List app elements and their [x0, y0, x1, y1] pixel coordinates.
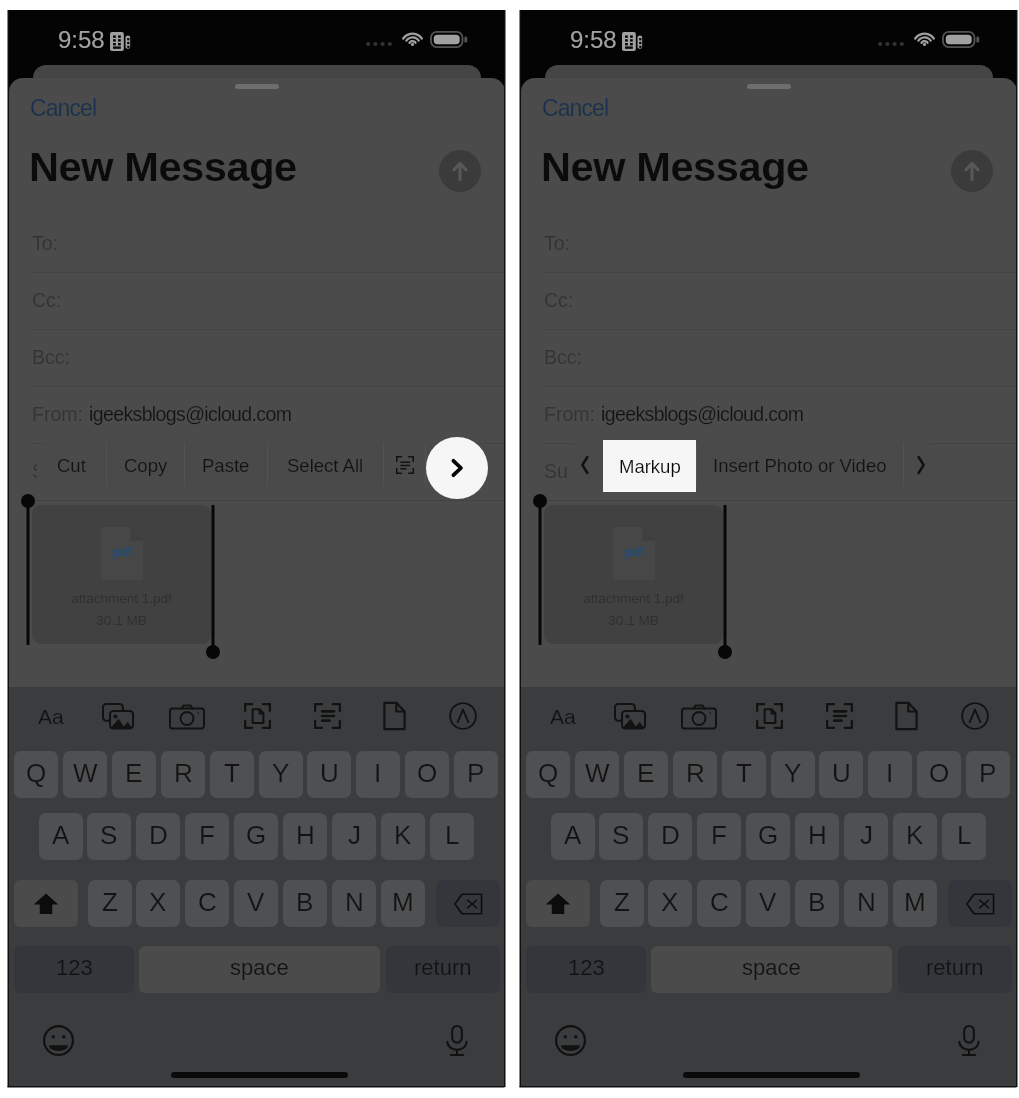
- button[interactable]: 123: [14, 946, 134, 993]
- button[interactable]: L: [430, 813, 474, 860]
- button[interactable]: Z: [88, 880, 132, 927]
- button[interactable]: J: [844, 813, 888, 860]
- button[interactable]: pdf: [32, 505, 211, 644]
- button[interactable]: Scan document: [748, 695, 790, 737]
- button[interactable]: V: [746, 880, 790, 927]
- button[interactable]: Scan text: [306, 695, 348, 737]
- button[interactable]: N: [844, 880, 888, 927]
- button[interactable]: Send: [951, 150, 993, 192]
- button[interactable]: S: [599, 813, 643, 860]
- button[interactable]: From:: [9, 387, 505, 444]
- button[interactable]: Insert Photo or Video: [697, 443, 903, 487]
- button[interactable]: Shift: [14, 880, 78, 927]
- button[interactable]: M: [893, 880, 937, 927]
- button[interactable]: Cut: [37, 443, 106, 487]
- button[interactable]: Subject:: [521, 444, 1017, 501]
- button[interactable]: U: [307, 751, 351, 798]
- button[interactable]: K: [381, 813, 425, 860]
- button[interactable]: Emoji: [547, 1017, 593, 1063]
- button[interactable]: Shift: [526, 880, 590, 927]
- button[interactable]: E: [624, 751, 668, 798]
- button[interactable]: P: [966, 751, 1010, 798]
- button[interactable]: Cc:: [9, 273, 505, 330]
- button[interactable]: Bcc:: [521, 330, 1017, 387]
- button[interactable]: G: [746, 813, 790, 860]
- button[interactable]: R: [673, 751, 717, 798]
- button[interactable]: B: [283, 880, 327, 927]
- button[interactable]: Camera: [166, 695, 208, 737]
- button[interactable]: K: [893, 813, 937, 860]
- button[interactable]: To:: [521, 216, 1017, 273]
- button[interactable]: Backspace: [436, 880, 500, 927]
- button[interactable]: Photos: [97, 695, 139, 737]
- button[interactable]: Scan text: [384, 443, 425, 487]
- button[interactable]: V: [234, 880, 278, 927]
- button[interactable]: Scan document: [236, 695, 278, 737]
- button[interactable]: F: [185, 813, 229, 860]
- button[interactable]: More options: [904, 443, 937, 487]
- button[interactable]: U: [819, 751, 863, 798]
- button[interactable]: X: [136, 880, 180, 927]
- button[interactable]: T: [722, 751, 766, 798]
- button[interactable]: I: [356, 751, 400, 798]
- button[interactable]: W: [63, 751, 107, 798]
- button[interactable]: G: [234, 813, 278, 860]
- button[interactable]: Y: [771, 751, 815, 798]
- button[interactable]: Camera: [678, 695, 720, 737]
- button[interactable]: Photos: [609, 695, 651, 737]
- button[interactable]: N: [332, 880, 376, 927]
- button[interactable]: Backspace: [948, 880, 1012, 927]
- button[interactable]: Markup: [603, 440, 696, 492]
- button[interactable]: L: [942, 813, 986, 860]
- button[interactable]: Attach file: [373, 695, 415, 737]
- button[interactable]: Attach file: [885, 695, 927, 737]
- button[interactable]: Send: [439, 150, 481, 192]
- button[interactable]: T: [210, 751, 254, 798]
- button[interactable]: H: [283, 813, 327, 860]
- button[interactable]: Cc:: [521, 273, 1017, 330]
- button[interactable]: Copy: [107, 443, 184, 487]
- button[interactable]: From:: [521, 387, 1017, 444]
- button[interactable]: Y: [259, 751, 303, 798]
- button[interactable]: space: [139, 946, 380, 993]
- button[interactable]: Bcc:: [9, 330, 505, 387]
- button[interactable]: C: [697, 880, 741, 927]
- button[interactable]: D: [136, 813, 180, 860]
- button[interactable]: Text format: [30, 695, 72, 737]
- button[interactable]: I: [868, 751, 912, 798]
- button[interactable]: Back: [567, 443, 603, 487]
- button[interactable]: Scan text: [818, 695, 860, 737]
- button[interactable]: Subject:: [9, 444, 505, 501]
- button[interactable]: Z: [600, 880, 644, 927]
- button[interactable]: C: [185, 880, 229, 927]
- button[interactable]: J: [332, 813, 376, 860]
- button[interactable]: Q: [526, 751, 570, 798]
- button[interactable]: Emoji: [35, 1017, 81, 1063]
- button[interactable]: M: [381, 880, 425, 927]
- button[interactable]: return: [386, 946, 500, 993]
- button[interactable]: W: [575, 751, 619, 798]
- button[interactable]: A: [551, 813, 595, 860]
- button[interactable]: Markup: [954, 695, 996, 737]
- button[interactable]: O: [917, 751, 961, 798]
- button[interactable]: E: [112, 751, 156, 798]
- button[interactable]: H: [795, 813, 839, 860]
- button[interactable]: To:: [9, 216, 505, 273]
- button[interactable]: A: [39, 813, 83, 860]
- button[interactable]: Cancel: [537, 89, 614, 127]
- button[interactable]: S: [87, 813, 131, 860]
- button[interactable]: More options: [426, 443, 481, 487]
- button[interactable]: Dictation: [946, 1017, 992, 1063]
- button[interactable]: R: [161, 751, 205, 798]
- button[interactable]: Dictation: [434, 1017, 480, 1063]
- button[interactable]: Markup: [604, 443, 696, 487]
- button[interactable]: Select All: [268, 443, 383, 487]
- button[interactable]: Show more actions: [426, 437, 488, 499]
- button[interactable]: D: [648, 813, 692, 860]
- button[interactable]: Markup: [442, 695, 484, 737]
- button[interactable]: Q: [14, 751, 58, 798]
- button[interactable]: F: [697, 813, 741, 860]
- button[interactable]: X: [648, 880, 692, 927]
- button[interactable]: Paste: [185, 443, 267, 487]
- button[interactable]: 123: [526, 946, 646, 993]
